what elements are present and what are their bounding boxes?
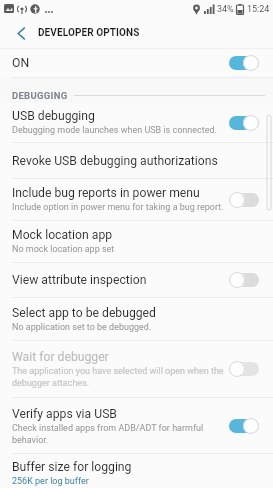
button[interactable]: Verify apps via USB xyxy=(0,398,273,453)
button[interactable] xyxy=(10,22,32,44)
staticText: 34% xyxy=(217,4,234,15)
button[interactable]: Select app to be debugged xyxy=(0,298,273,340)
staticText: The application you have selected will o… xyxy=(12,366,224,388)
staticText: 15:24 xyxy=(247,4,270,15)
staticText: Select app to be debugged xyxy=(12,306,156,320)
staticText: Debugging mode launches when USB is conn… xyxy=(12,125,217,136)
staticText: Verify apps via USB xyxy=(12,407,117,421)
staticText: 256K per log buffer xyxy=(12,476,89,487)
staticText: USB debugging xyxy=(12,109,95,123)
button[interactable]: Mock location app xyxy=(0,221,273,262)
button[interactable]: ON xyxy=(0,49,273,77)
button[interactable]: Include bug reports in power menu xyxy=(0,179,273,220)
button[interactable]: View attribute inspection xyxy=(0,263,273,297)
staticText: Buffer size for logging xyxy=(12,460,132,474)
staticText: Mock location app xyxy=(12,228,113,242)
staticText: Include option in power menu for taking … xyxy=(12,202,224,213)
staticText: Include bug reports in power menu xyxy=(12,186,200,200)
button[interactable]: Buffer size for logging xyxy=(0,454,273,488)
staticText: Revoke USB debugging authorizations xyxy=(12,154,218,168)
button[interactable]: Wait for debugger xyxy=(0,341,273,397)
staticText: No mock location app set xyxy=(12,244,115,255)
staticText: ON xyxy=(12,56,30,70)
staticText: Wait for debugger xyxy=(12,350,109,364)
button[interactable]: Revoke USB debugging authorizations xyxy=(0,143,273,178)
staticText: DEVELOPER OPTIONS xyxy=(38,27,140,39)
staticText: View attribute inspection xyxy=(12,273,147,287)
button[interactable]: USB debugging xyxy=(0,103,273,142)
staticText: No application set to be debugged. xyxy=(12,322,152,333)
staticText: Check installed apps from ADB/ADT for ha… xyxy=(12,423,204,445)
staticText: DEBUGGING xyxy=(12,90,68,101)
